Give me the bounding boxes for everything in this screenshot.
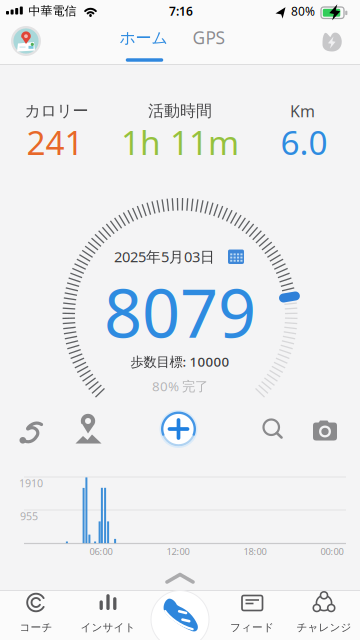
button[interactable]: ストリーク [0, 0, 360, 640]
button[interactable]: 検索 [0, 0, 360, 640]
button[interactable]: コーチ [0, 0, 360, 640]
staticText: 中華電信 [28, 4, 76, 18]
staticText: 12:00 [166, 545, 189, 558]
staticText: 歩数目標: 10000 [130, 353, 229, 370]
button[interactable]: ホーム [0, 0, 360, 640]
staticText: GPS [192, 26, 225, 49]
button[interactable]: ルート [0, 0, 360, 640]
staticText: 7:16 [169, 3, 193, 19]
button[interactable]: 展開 [0, 0, 360, 640]
staticText: 241 [26, 120, 83, 164]
staticText: 6.0 [280, 120, 327, 164]
staticText: インサイト [80, 621, 135, 634]
staticText: 18:00 [243, 545, 266, 558]
staticText: ホーム [119, 28, 167, 48]
staticText: 2025年5月03日 [114, 247, 215, 266]
button[interactable]: 2025年5月03日 [114, 247, 244, 266]
button[interactable]: チャレンジ [0, 0, 360, 640]
staticText: 80% 完了 [152, 377, 208, 395]
button[interactable]: フィード [0, 0, 360, 640]
staticText: カロリー [24, 101, 88, 121]
button[interactable]: カメラ [0, 0, 360, 640]
staticText: 1h 11m [121, 120, 239, 164]
staticText: チャレンジ [296, 621, 351, 634]
button[interactable]: プロフィール [0, 0, 360, 640]
staticText: コーチ [19, 621, 52, 634]
button[interactable]: ホーム [119, 28, 167, 48]
staticText: Km [290, 100, 315, 122]
staticText: 80% [291, 3, 315, 19]
button[interactable]: GPS [192, 26, 225, 49]
staticText: 8079 [104, 268, 256, 356]
staticText: 00:00 [320, 545, 343, 558]
button[interactable]: 場所 [0, 0, 360, 640]
staticText: 955 [20, 509, 38, 523]
staticText: 1910 [19, 476, 43, 490]
button[interactable]: 記録を追加 [0, 0, 360, 640]
staticText: 活動時間 [148, 101, 212, 121]
staticText: フィード [230, 621, 274, 634]
button[interactable]: インサイト [0, 0, 360, 640]
staticText: 06:00 [89, 545, 112, 558]
